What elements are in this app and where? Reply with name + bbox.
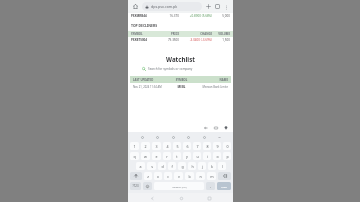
staticText: c [167,174,169,179]
staticText: i [207,154,208,159]
button[interactable]: Addresses [222,124,229,131]
staticText: ?123 [132,184,139,188]
button[interactable]: More options [222,3,230,11]
button[interactable]: b [185,172,194,180]
button[interactable]: q [130,152,139,160]
button[interactable]: 2 [141,142,150,150]
button[interactable]: w [141,152,150,160]
staticText: a [139,164,142,169]
button[interactable]: Nov 21, 2024 11:34 AM [133,83,228,90]
button[interactable]: i [203,152,211,160]
button[interactable]: t [173,152,181,160]
button[interactable]: 3 [152,142,161,150]
staticText: LAST UPDATED [133,78,168,82]
staticText: 3 [155,144,158,149]
staticText: s [151,164,153,169]
staticText: r [166,154,168,159]
staticText: MEBL [168,85,195,89]
button[interactable]: l [218,162,226,170]
button[interactable]: 0 [223,142,231,150]
button[interactable]: s [147,162,156,170]
button[interactable]: x [154,172,162,180]
button[interactable]: 5 [173,142,181,150]
button[interactable]: m [207,172,216,180]
button[interactable]: dps.psx.com.pk [142,2,202,11]
staticText: u [196,154,199,159]
staticText: m [210,174,214,179]
staticText: h [191,164,194,169]
button[interactable]: Key [143,182,152,190]
staticText: -3.0400 (-3.69%) [179,38,212,42]
button[interactable]: Tabs [213,2,222,11]
button[interactable]: y [183,152,191,160]
button[interactable]: Passwords [202,124,209,131]
staticText: o [216,154,219,159]
staticText: PSXMRB44 [131,14,159,18]
button[interactable]: Keyboard tool 3 [170,134,176,140]
button[interactable]: Keyboard tool 1 [139,134,145,140]
button[interactable]: 1 [130,142,139,150]
button[interactable]: New tab [204,2,213,11]
button[interactable]: Keyboard tool 2 [154,134,160,140]
button[interactable]: Back [148,194,156,202]
button[interactable]: 4 [163,142,171,150]
staticText: l [222,164,223,169]
staticText: 4 [166,144,169,149]
button[interactable]: o [213,152,221,160]
staticText: j [202,164,203,169]
staticText: y [186,154,188,159]
staticText: CHANGE [179,32,212,36]
button[interactable]: Home [131,2,140,11]
button[interactable]: f [168,162,176,170]
staticText: d [161,164,164,169]
staticText: Watchlist [166,55,195,63]
button[interactable]: v [174,172,183,180]
staticText: English (UK) [172,185,187,188]
button[interactable]: e [152,152,161,160]
button[interactable]: Key [130,182,141,190]
staticText: SYMBOL [168,78,195,82]
button[interactable]: g [178,162,186,170]
button[interactable]: p [223,152,231,160]
staticText: g [181,164,184,169]
button[interactable]: j [198,162,206,170]
staticText: Search for symbols or company [148,67,193,71]
button[interactable]: Search for symbols or company [142,66,219,72]
button[interactable]: d [158,162,166,170]
staticText: 1,500 [212,38,230,42]
button[interactable]: Key [206,182,215,190]
button[interactable]: c [164,172,172,180]
staticText: f [171,164,173,169]
staticText: 5 [176,144,179,149]
button[interactable]: 6 [183,142,191,150]
staticText: 5,000 [212,14,230,18]
button[interactable]: Keyboard tool 4 [185,134,191,140]
staticText: e [155,154,158,159]
staticText: t [176,154,178,159]
button[interactable]: n [196,172,205,180]
button[interactable]: 9 [213,142,221,150]
button[interactable]: a [136,162,145,170]
button[interactable]: Key [218,172,231,180]
button[interactable]: Payment methods [212,124,219,131]
button[interactable]: Enter [217,182,231,190]
button[interactable]: u [193,152,201,160]
button[interactable]: k [208,162,216,170]
button[interactable]: 7 [193,142,201,150]
button[interactable]: Keyboard tool 6 [216,134,222,140]
button[interactable]: Keyboard tool 5 [201,134,207,140]
button[interactable]: 8 [203,142,211,150]
staticText: PRICE [159,32,179,36]
staticText: TOP DECLINERS [131,23,158,28]
staticText: w [144,154,147,159]
staticText: 7 [196,144,199,149]
button[interactable]: Recent apps [205,194,213,202]
button[interactable]: h [188,162,196,170]
button[interactable]: English (UK) [154,182,204,190]
button[interactable]: Key [130,172,142,180]
button[interactable]: z [144,172,152,180]
staticText: k [211,164,213,169]
staticText: 2 [144,144,147,149]
button[interactable]: r [163,152,171,160]
button[interactable]: Home [177,194,185,202]
